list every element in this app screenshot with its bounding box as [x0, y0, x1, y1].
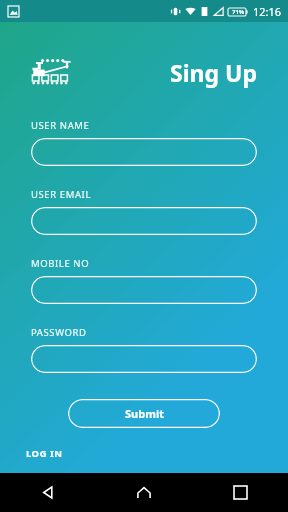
- staticText: Submit: [125, 406, 164, 421]
- button[interactable]: [31, 345, 257, 373]
- staticText: USER NAME: [31, 119, 90, 132]
- staticText: PASSWORD: [31, 326, 87, 339]
- button[interactable]: Back: [0, 473, 96, 512]
- button[interactable]: LOG IN: [23, 444, 66, 463]
- button[interactable]: Home: [96, 473, 192, 512]
- button[interactable]: [31, 207, 257, 235]
- button[interactable]: Recent apps: [192, 473, 288, 512]
- button[interactable]: [31, 138, 257, 166]
- button[interactable]: [31, 276, 257, 304]
- staticText: LOG IN: [26, 447, 63, 460]
- staticText: Sing Up: [170, 57, 257, 88]
- staticText: MOBILE NO: [31, 257, 90, 270]
- staticText: 12:16: [253, 4, 282, 19]
- staticText: 71%: [232, 8, 245, 16]
- button[interactable]: Submit: [68, 399, 220, 428]
- staticText: USER EMAIL: [31, 188, 91, 201]
